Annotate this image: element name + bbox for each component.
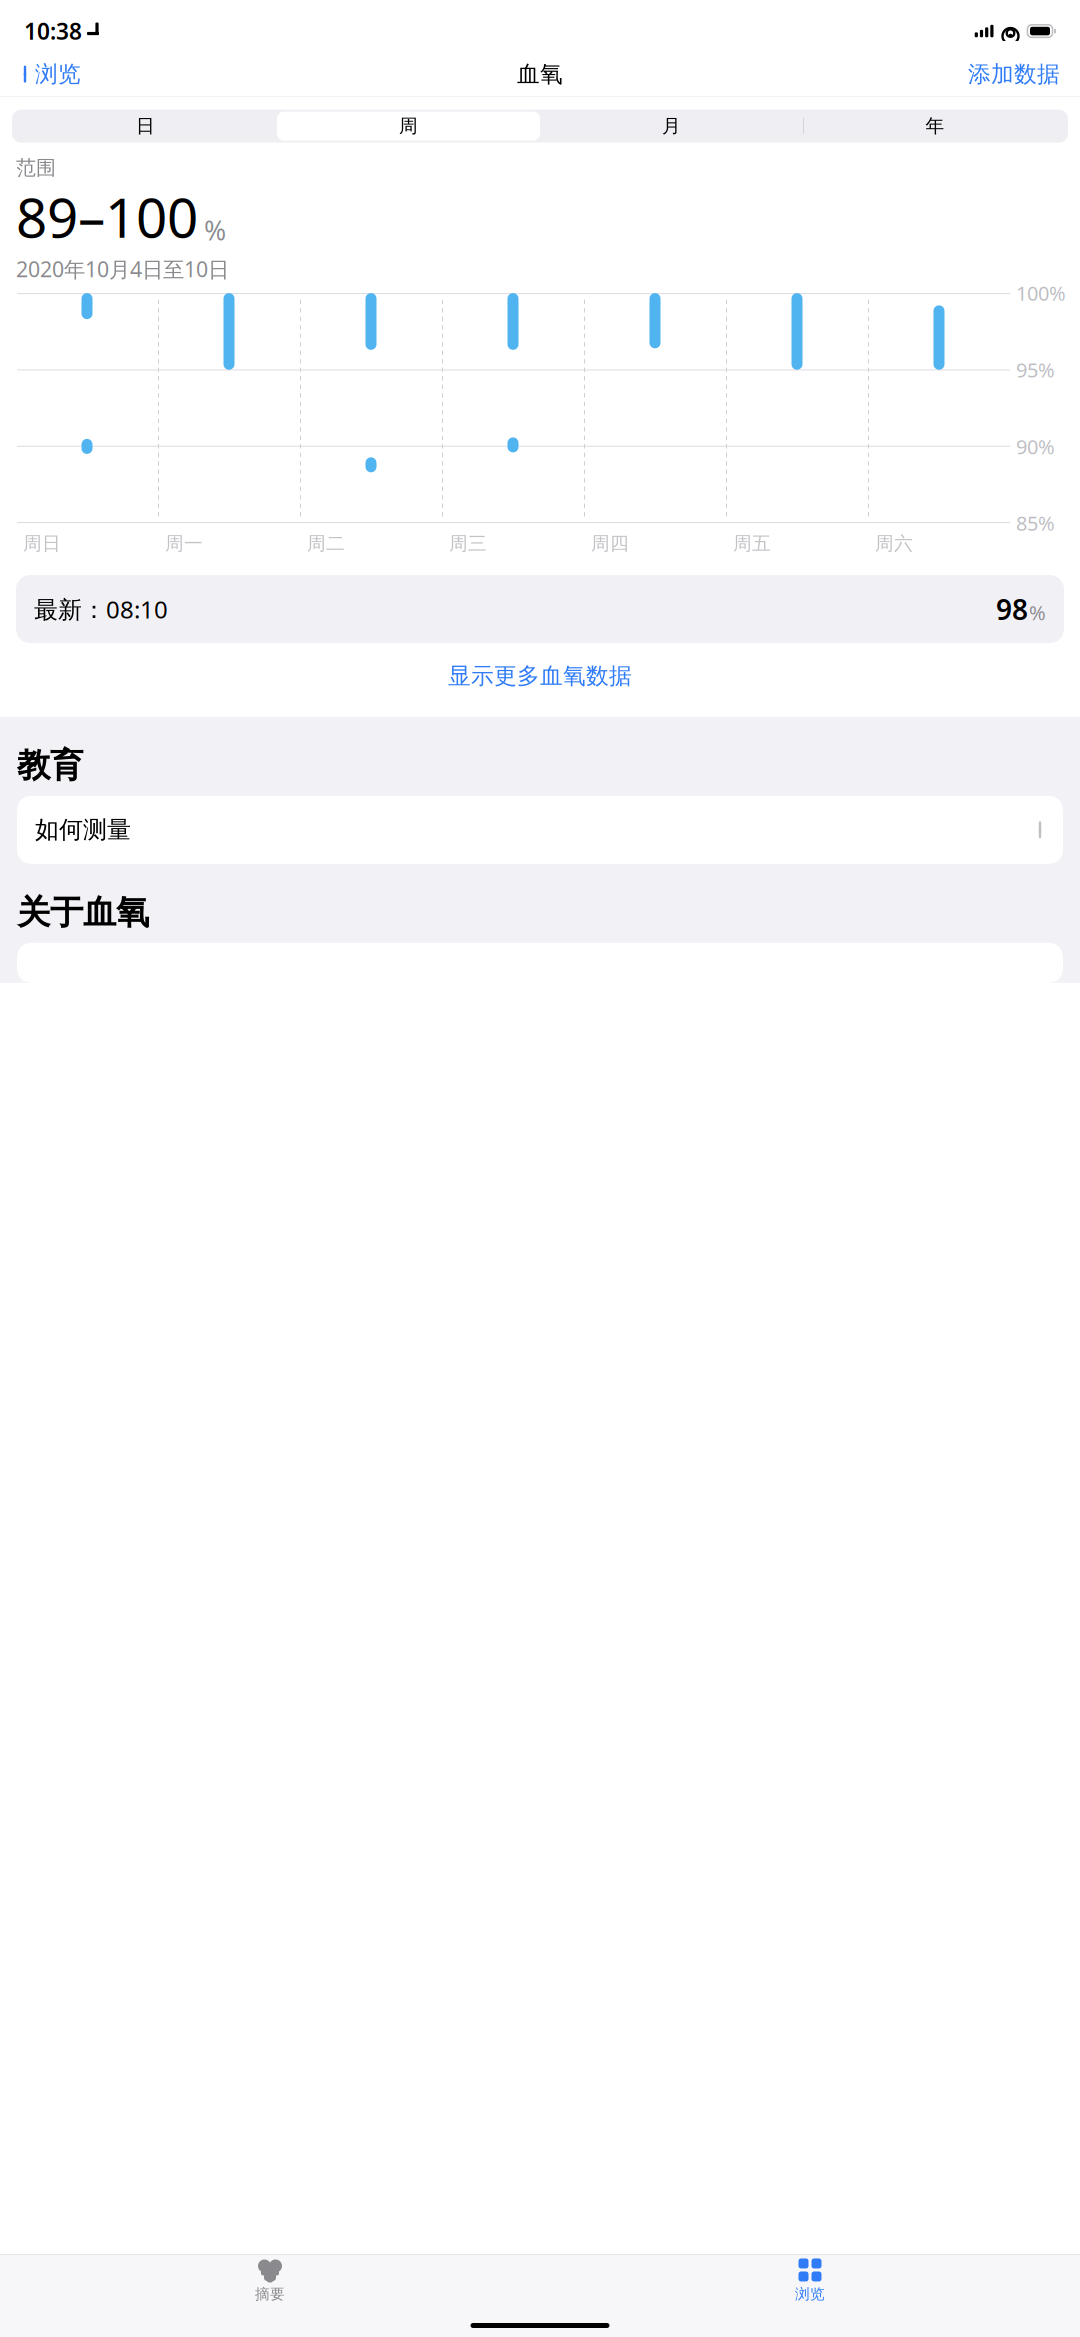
staticText: 周三 xyxy=(449,532,487,555)
staticText: 浏览 xyxy=(35,60,81,88)
staticText: 周二 xyxy=(307,532,345,555)
staticText: 周日 xyxy=(23,532,61,555)
staticText: 2020年10月4日至10日 xyxy=(16,255,229,283)
button[interactable]: 日 xyxy=(14,112,277,141)
staticText: 年 xyxy=(925,115,944,137)
button[interactable]: 摘要 xyxy=(0,2251,540,2307)
staticText: 周五 xyxy=(733,532,771,555)
staticText: 89–100 xyxy=(16,180,198,253)
button[interactable]: 月 xyxy=(540,112,803,141)
staticText: 血氧 xyxy=(517,60,563,88)
button[interactable]: 添加数据 xyxy=(954,51,1074,97)
staticText: 10:38 xyxy=(24,16,82,46)
staticText: % xyxy=(1029,599,1046,626)
staticText: 如何测量 xyxy=(35,815,131,845)
staticText: 90% xyxy=(1016,433,1055,460)
staticText: 关于血氧 xyxy=(17,892,149,933)
staticText: 周一 xyxy=(165,532,203,555)
staticText: 最新：08:10 xyxy=(34,593,168,625)
staticText: 教育 xyxy=(17,745,83,786)
staticText: 周六 xyxy=(875,532,913,555)
staticText: 周四 xyxy=(591,532,629,555)
button[interactable]: 浏览 xyxy=(540,2251,1080,2307)
staticText: 100% xyxy=(1016,280,1066,306)
staticText: 98 xyxy=(996,590,1028,628)
button[interactable]: 如何测量 xyxy=(17,796,1063,864)
staticText: 周 xyxy=(399,115,418,137)
staticText: 范围 xyxy=(16,156,56,180)
button[interactable]: 周 xyxy=(277,112,540,141)
staticText: % xyxy=(204,212,226,248)
button[interactable]: 浏览 xyxy=(6,51,95,97)
staticText: 显示更多血氧数据 xyxy=(448,662,632,690)
staticText: 月 xyxy=(662,115,681,137)
staticText: 浏览 xyxy=(795,2285,825,2303)
button[interactable]: 年 xyxy=(803,112,1066,141)
staticText: 摘要 xyxy=(255,2285,285,2303)
staticText: 95% xyxy=(1016,356,1055,383)
staticText: 85% xyxy=(1016,510,1055,536)
staticText: 添加数据 xyxy=(968,60,1060,88)
button[interactable]: 显示更多血氧数据 xyxy=(0,649,1080,703)
staticText: 日 xyxy=(136,115,155,137)
